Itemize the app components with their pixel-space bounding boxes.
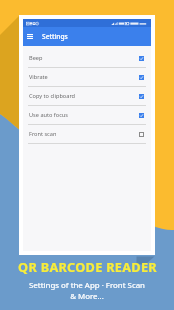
staticText: Settings of the App · Front Scan & More.…	[29, 280, 145, 301]
staticText: Copy to clipboard	[29, 92, 76, 100]
button[interactable]: Vibrate	[23, 68, 151, 87]
staticText: Beep	[29, 54, 43, 62]
staticText: Use auto focus	[29, 111, 68, 119]
button[interactable]: Use auto focus	[23, 106, 151, 125]
button[interactable]: Open navigation menu	[23, 27, 37, 46]
staticText: QR BARCODE READER	[18, 258, 157, 275]
staticText: Vibrate	[29, 73, 48, 81]
button[interactable]: Front scan	[23, 125, 151, 144]
button[interactable]: Beep	[23, 49, 151, 68]
button[interactable]: Copy to clipboard	[23, 87, 151, 106]
staticText: Settings	[42, 32, 68, 41]
staticText: Front scan	[29, 130, 57, 138]
